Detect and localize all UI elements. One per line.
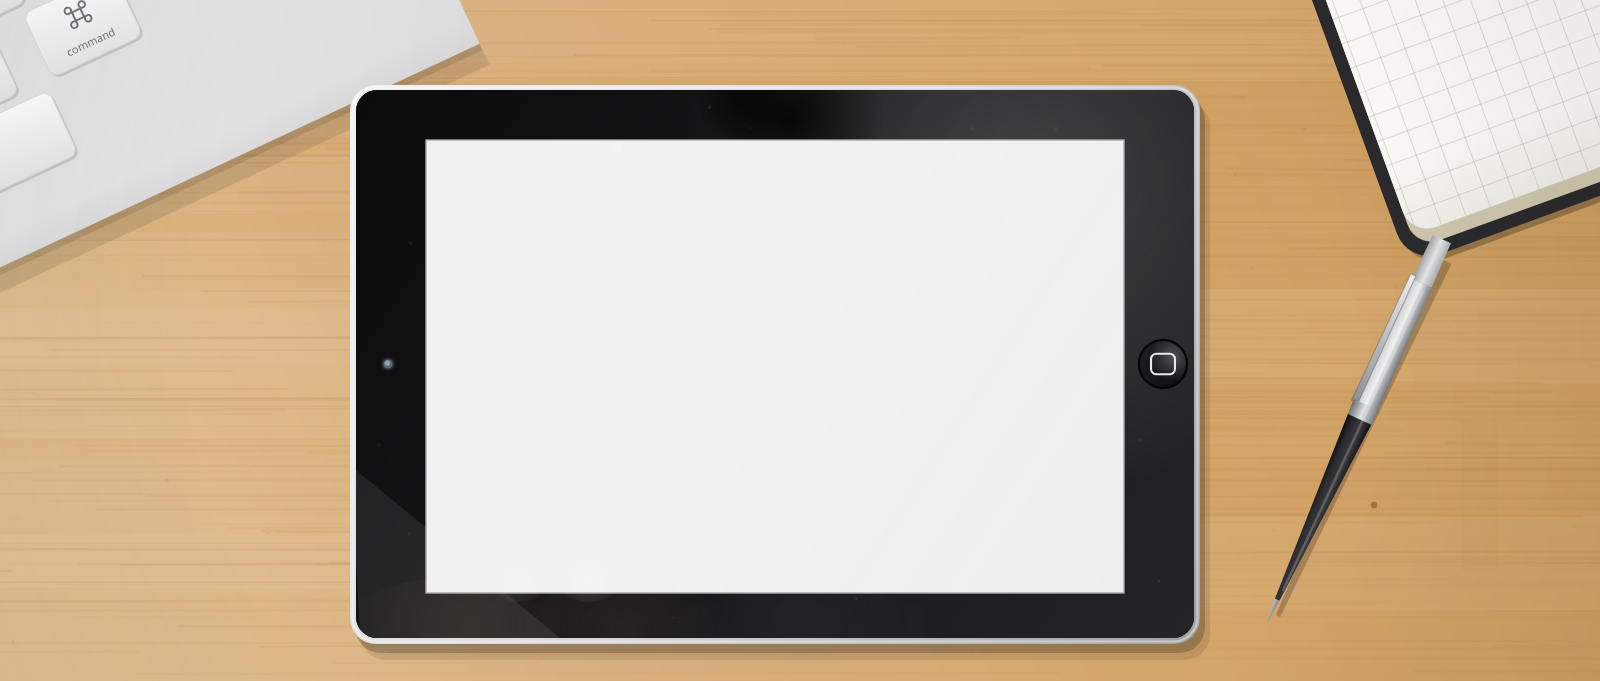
button[interactable]: Tablet screen	[0, 0, 1600, 681]
